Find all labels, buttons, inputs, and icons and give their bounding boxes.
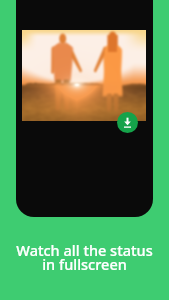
staticText: Watch all the status in fullscreen	[0, 240, 169, 275]
button[interactable]: Download	[117, 112, 138, 133]
